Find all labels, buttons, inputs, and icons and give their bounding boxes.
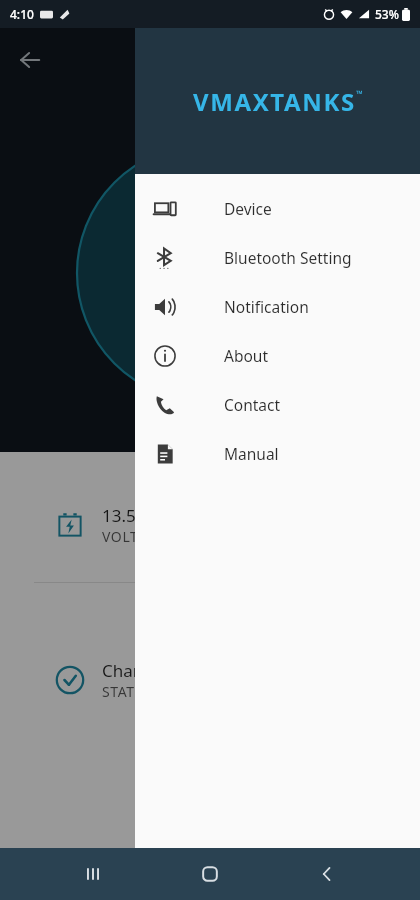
staticText: 4:10 <box>10 6 34 22</box>
staticText: Contact <box>224 394 281 415</box>
button[interactable]: Device <box>135 184 420 233</box>
staticText: Manual <box>224 443 279 464</box>
staticText: Notification <box>224 296 309 317</box>
staticText: VMAXTANKS <box>193 85 356 118</box>
staticText: 53% <box>375 6 399 22</box>
button[interactable]: Back <box>303 850 351 898</box>
staticText: Bluetooth Setting <box>224 247 352 268</box>
staticText: Charging <box>102 659 176 682</box>
button[interactable]: Home <box>186 850 234 898</box>
staticText: About <box>224 345 268 366</box>
button[interactable]: Recents <box>69 850 117 898</box>
button[interactable]: About <box>135 331 420 380</box>
staticText: VOLTAGE <box>102 527 166 546</box>
staticText: ™ <box>356 87 363 99</box>
button[interactable]: Manual <box>135 429 420 478</box>
staticText: STATUS <box>102 682 154 701</box>
button[interactable]: Back <box>8 38 52 82</box>
button[interactable]: Notification <box>135 282 420 331</box>
staticText: Device <box>224 198 272 219</box>
button[interactable]: Contact <box>135 380 420 429</box>
button[interactable]: Bluetooth Setting <box>135 233 420 282</box>
staticText: 13.5V <box>102 504 146 527</box>
